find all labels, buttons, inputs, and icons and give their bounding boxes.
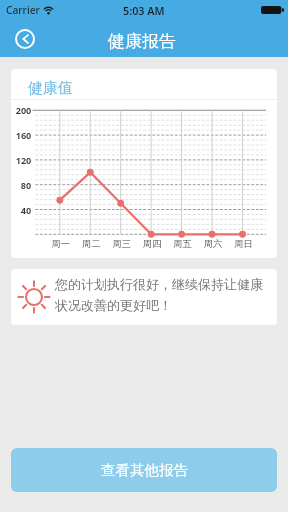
staticText: Carrier bbox=[6, 3, 40, 17]
staticText: 健康值 bbox=[28, 79, 73, 98]
staticText: 健康报告 bbox=[108, 31, 176, 52]
button[interactable]: 查看其他报告 bbox=[11, 448, 277, 492]
staticText: 5:03 AM bbox=[123, 3, 165, 18]
staticText: 您的计划执行很好，继续保持让健康 状况改善的更好吧！ bbox=[55, 276, 263, 314]
staticText: 查看其他报告 bbox=[101, 461, 188, 479]
button[interactable]: Back bbox=[12, 26, 38, 52]
